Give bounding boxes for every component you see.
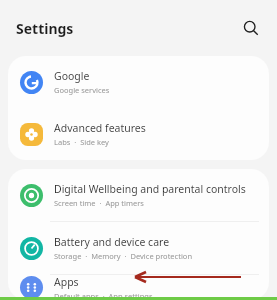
button[interactable]: Advanced features: [8, 108, 269, 160]
staticText: Storage · Memory · Device protection: [54, 251, 193, 261]
staticText: Digital Wellbeing and parental controls: [54, 182, 246, 196]
staticText: Google: [54, 69, 90, 83]
staticText: Apps: [54, 275, 79, 289]
staticText: Screen time · App timers: [54, 198, 144, 208]
staticText: Battery and device care: [54, 235, 170, 249]
staticText: Google services: [54, 85, 110, 95]
button[interactable]: Google: [8, 56, 269, 108]
staticText: Default apps · App settings: [54, 291, 153, 300]
button[interactable]: Battery and device care: [8, 222, 269, 274]
button[interactable]: Search: [237, 14, 265, 42]
staticText: Advanced features: [54, 121, 146, 135]
staticText: Labs · Side key: [54, 137, 109, 147]
staticText: Settings: [16, 19, 74, 38]
button[interactable]: Apps: [8, 275, 269, 300]
button[interactable]: Digital Wellbeing and parental controls: [8, 169, 269, 221]
